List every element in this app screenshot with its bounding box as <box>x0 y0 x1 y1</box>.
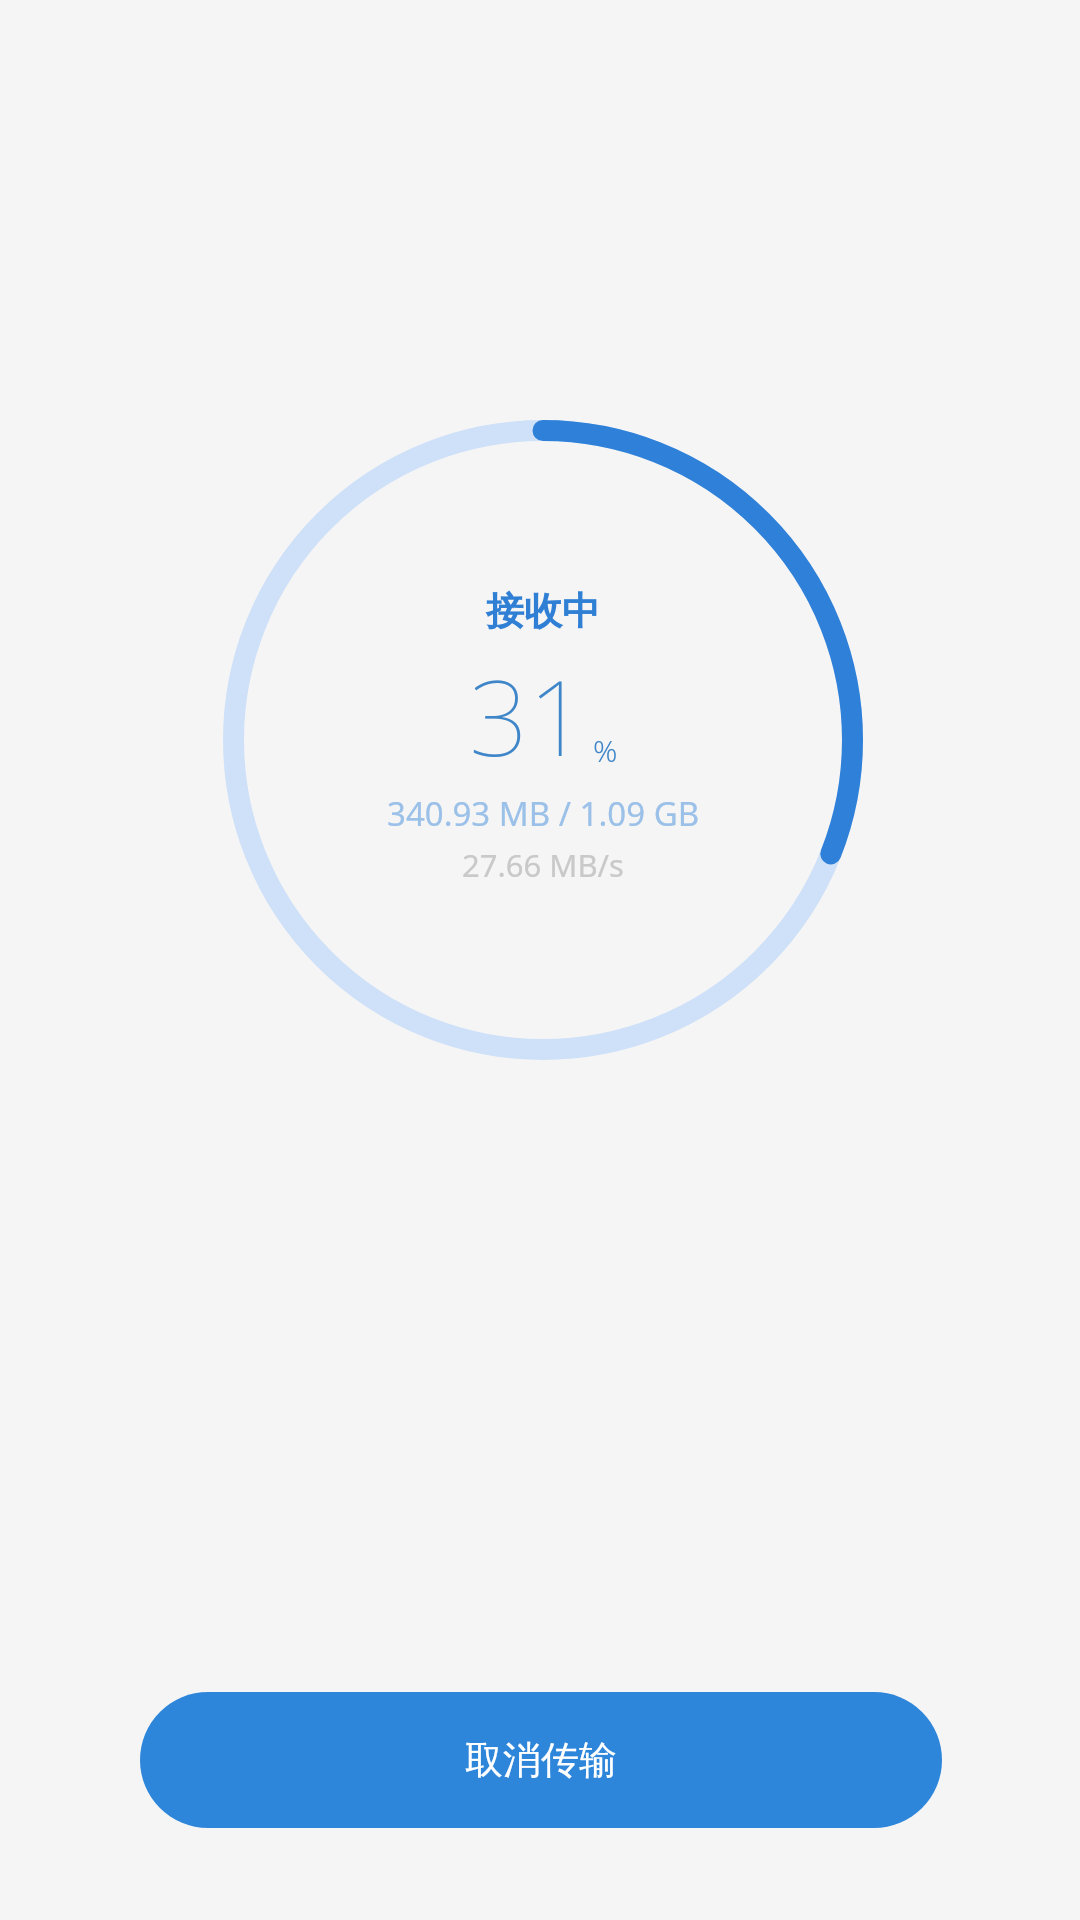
staticText: 340.93 MB / 1.09 GB <box>387 791 700 836</box>
staticText: % <box>593 730 618 771</box>
staticText: 取消传输 <box>465 1736 617 1784</box>
staticText: 接收中 <box>486 587 600 635</box>
button[interactable]: 取消传输 <box>140 1692 942 1828</box>
staticText: 31 <box>469 645 588 787</box>
staticText: 27.66 MB/s <box>462 844 624 886</box>
